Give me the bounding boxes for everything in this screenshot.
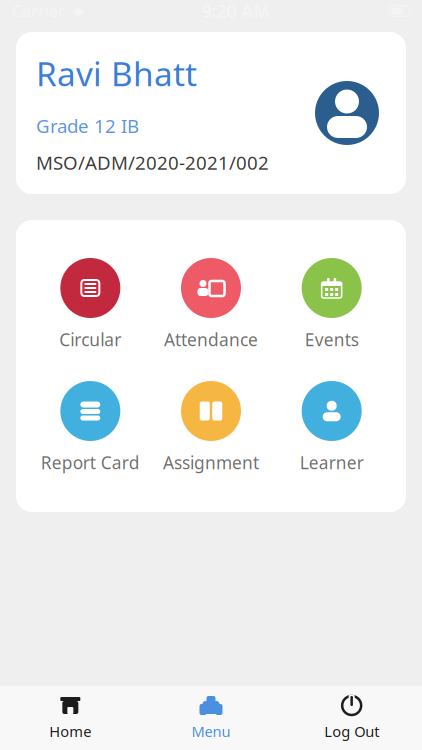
staticText: Events [305,328,359,351]
staticText: Grade 12 IB [36,113,139,138]
button[interactable]: Log Out [281,685,422,750]
staticText: Home [49,721,91,741]
button[interactable]: Events [271,258,392,351]
staticText: Log Out [324,721,379,741]
staticText: Circular [59,328,121,351]
button[interactable]: Circular [30,258,151,351]
button[interactable]: Home [0,685,141,750]
button[interactable]: Assignment [151,381,271,474]
staticText: Ravi Bhatt [36,51,197,95]
staticText: Learner [300,451,364,474]
staticText: Report Card [41,451,140,474]
staticText: Attendance [164,328,258,351]
staticText: Menu [191,721,230,741]
button[interactable]: Menu [141,685,281,750]
button[interactable]: Report Card [30,381,151,474]
staticText: MSO/ADM/2020-2021/002 [36,150,269,175]
button[interactable]: Learner [271,381,392,474]
button[interactable]: Attendance [151,258,271,351]
staticText: Assignment [163,451,259,474]
